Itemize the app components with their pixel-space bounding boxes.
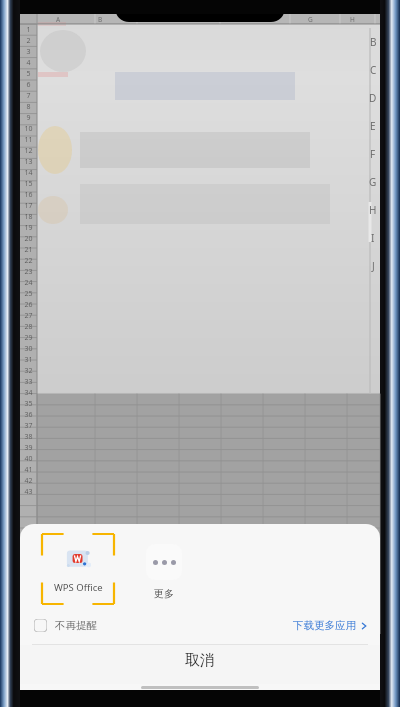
staticText: D (369, 91, 377, 105)
staticText: 16 (24, 190, 33, 200)
staticText: 26 (24, 300, 33, 310)
staticText: 25 (24, 289, 33, 299)
staticText: 29 (24, 333, 33, 343)
staticText: 6 (26, 80, 31, 90)
staticText: 11 (24, 135, 33, 145)
staticText: 8 (26, 102, 31, 112)
staticText: 20 (24, 234, 33, 244)
staticText: 下载更多应用 (293, 619, 356, 632)
staticText: J (372, 259, 375, 273)
staticText: WPS Office (54, 581, 103, 594)
staticText: A (56, 15, 61, 24)
staticText: 42 (24, 476, 33, 486)
staticText: 10 (24, 124, 33, 134)
staticText: 7 (26, 91, 31, 101)
staticText: 19 (24, 223, 33, 233)
staticText: 36 (24, 410, 33, 420)
staticText: 38 (24, 432, 33, 442)
staticText: 15 (24, 179, 33, 189)
staticText: 33 (24, 377, 33, 387)
staticText: 17 (24, 201, 33, 211)
staticText: 9 (26, 113, 31, 123)
staticText: 41 (24, 465, 33, 475)
button[interactable]: 更多 (132, 534, 196, 600)
staticText: 31 (24, 355, 33, 365)
staticText: 24 (24, 278, 33, 288)
staticText: H (369, 203, 377, 217)
staticText: 28 (24, 322, 33, 332)
staticText: B (370, 35, 377, 49)
staticText: 13 (24, 157, 33, 167)
staticText: 2 (26, 36, 31, 46)
button[interactable]: Back (26, 14, 60, 46)
staticText: 更多 (154, 587, 174, 600)
staticText: H (350, 15, 355, 24)
staticText: 4 (26, 58, 31, 68)
staticText: 22 (24, 256, 33, 266)
staticText: 35 (24, 399, 33, 409)
staticText: 取消 (185, 651, 215, 670)
button[interactable]: 不再提醒 (34, 619, 97, 632)
staticText: 32 (24, 366, 33, 376)
staticText: I (371, 231, 375, 245)
staticText: 40 (24, 454, 33, 464)
staticText: 21 (24, 245, 33, 255)
button[interactable]: 下载更多应用 (293, 619, 368, 632)
staticText: 39 (24, 443, 33, 453)
button[interactable]: 取消 (20, 645, 380, 684)
staticText: G (369, 175, 377, 189)
staticText: 12 (24, 146, 33, 156)
staticText: 23 (24, 267, 33, 277)
staticText: B (98, 15, 103, 24)
staticText: C (370, 63, 377, 77)
button[interactable]: More options (340, 15, 374, 45)
staticText: 34 (24, 388, 33, 398)
staticText: G (308, 15, 313, 24)
staticText: 5 (26, 69, 31, 79)
staticText: 16:52 (30, 19, 59, 34)
staticText: 18 (24, 212, 33, 222)
staticText: 43 (24, 487, 33, 497)
staticText: 37 (24, 421, 33, 431)
staticText: 14 (24, 168, 33, 178)
button[interactable]: WPS Office (42, 534, 114, 604)
staticText: 1 (26, 25, 31, 35)
staticText: 27 (24, 311, 33, 321)
staticText: E (370, 119, 376, 133)
staticText: 不再提醒 (55, 619, 97, 632)
staticText: 30 (24, 344, 33, 354)
staticText: 3 (26, 47, 31, 57)
staticText: F (370, 147, 376, 161)
staticText: HD (322, 20, 336, 32)
